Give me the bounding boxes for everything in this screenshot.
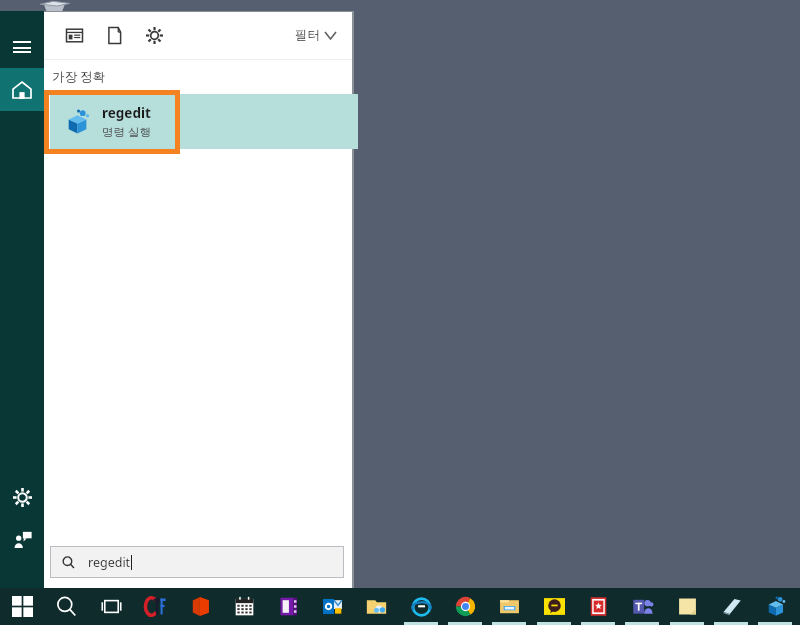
button[interactable]: Start: [1, 588, 43, 625]
button[interactable]: Notepad: [710, 588, 752, 625]
button[interactable]: Feedback: [0, 519, 44, 559]
button[interactable]: Chrome: [444, 588, 486, 625]
button[interactable]: OneDrive: [355, 588, 397, 625]
button[interactable]: regedit: [50, 94, 358, 149]
staticText: 필터: [295, 27, 320, 43]
button[interactable]: OneNote: [267, 588, 309, 625]
button[interactable]: Calendar: [223, 588, 265, 625]
staticText: 명령 실행: [102, 124, 151, 140]
button[interactable]: Apps: [54, 13, 94, 57]
button[interactable]: Task View: [90, 588, 132, 625]
button[interactable]: Office: [178, 588, 220, 625]
button[interactable]: regedit: [50, 546, 344, 578]
button[interactable]: Registry Editor: [754, 588, 796, 625]
button[interactable]: CTF: [134, 588, 176, 625]
button[interactable]: Internet Explorer: [400, 588, 442, 625]
staticText: regedit: [102, 104, 151, 122]
button[interactable]: 필터: [287, 21, 344, 49]
button[interactable]: Documents: [94, 13, 134, 57]
button[interactable]: Outlook: [311, 588, 353, 625]
button[interactable]: Settings: [134, 13, 174, 57]
button[interactable]: Teams: [621, 588, 663, 625]
button[interactable]: Home: [0, 68, 44, 111]
button[interactable]: Sticky Notes: [666, 588, 708, 625]
button[interactable]: Bookmark: [577, 588, 619, 625]
button[interactable]: Search: [45, 588, 87, 625]
staticText: 가장 정확: [52, 68, 106, 85]
button[interactable]: KakaoTalk: [533, 588, 575, 625]
staticText: regedit: [88, 554, 131, 571]
button[interactable]: File Explorer: [488, 588, 530, 625]
button[interactable]: Menu: [0, 25, 44, 68]
button[interactable]: Settings: [0, 477, 44, 517]
